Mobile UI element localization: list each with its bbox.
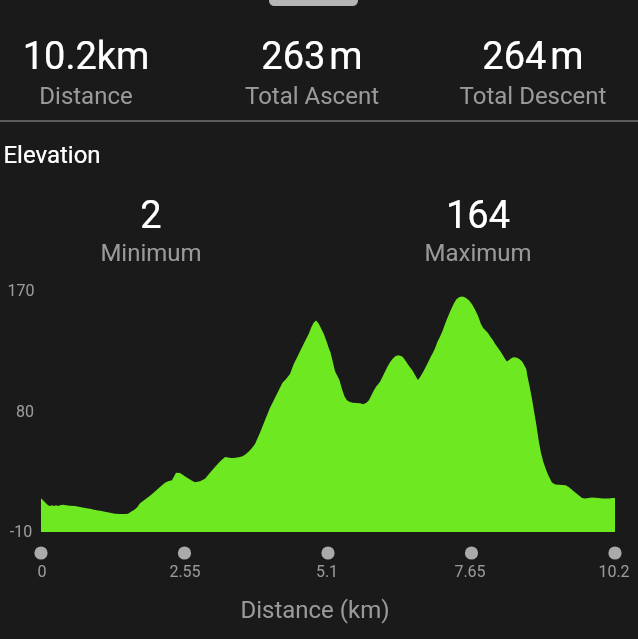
staticText: 80 (0, 402, 245, 421)
staticText: 5.1 (107, 562, 547, 581)
staticText: 10.2 (394, 562, 638, 581)
staticText: Total Descent (313, 82, 638, 110)
staticText: Total Ascent (92, 82, 532, 110)
button[interactable] (46, 184, 256, 264)
staticText: 10.2km (0, 34, 306, 79)
staticText: 7.65 (250, 562, 638, 581)
button[interactable] (0, 25, 191, 105)
button[interactable] (207, 25, 417, 105)
staticText: 164 (258, 193, 638, 238)
button[interactable] (373, 184, 583, 264)
staticText: Distance (km) (95, 596, 535, 624)
staticText: Minimum (0, 239, 371, 267)
staticText: Distance (0, 82, 306, 110)
staticText: 0 (0, 562, 262, 581)
staticText: 2 (0, 193, 371, 238)
staticText: 170 (0, 281, 241, 300)
staticText: Elevation (0, 141, 272, 169)
button[interactable]: Collapse sheet (269, 0, 358, 6)
staticText: 264 m (313, 34, 638, 79)
staticText: 2.55 (0, 562, 405, 581)
staticText: 263 m (92, 34, 532, 79)
button[interactable] (428, 25, 638, 105)
staticText: Maximum (258, 239, 638, 267)
staticText: -10 (0, 522, 241, 541)
